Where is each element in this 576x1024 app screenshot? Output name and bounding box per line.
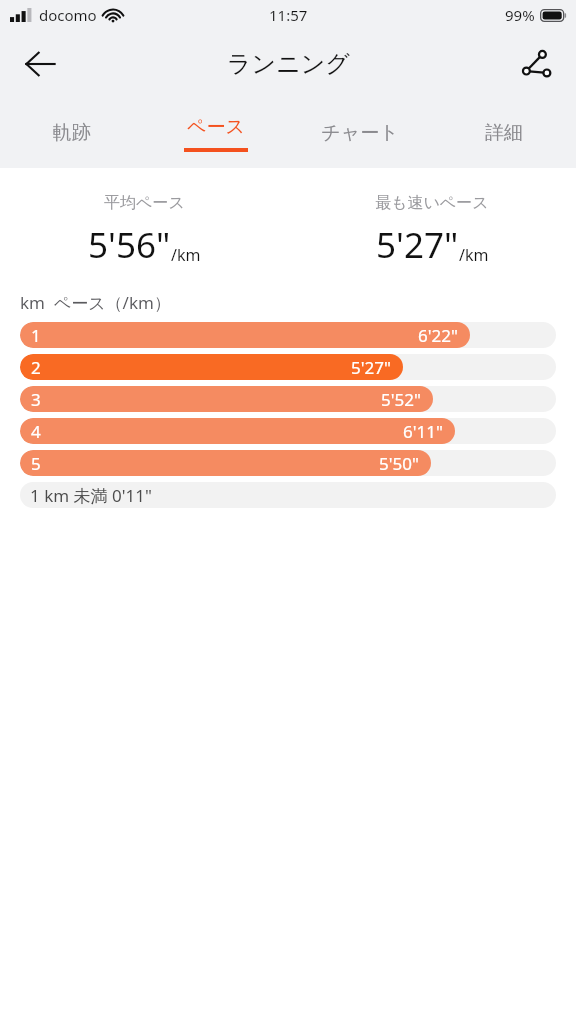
staticText: /km: [171, 244, 201, 266]
staticText: 平均ペース: [104, 193, 185, 213]
staticText: 5'56": [88, 221, 171, 269]
button[interactable]: チャート: [288, 98, 432, 168]
staticText: 11:57: [269, 5, 308, 25]
button[interactable]: 詳細: [432, 98, 576, 168]
staticText: 軌跡: [53, 121, 91, 145]
staticText: チャート: [321, 121, 399, 145]
button[interactable]: ペース: [144, 98, 288, 168]
staticText: km ペース（/km）: [20, 291, 171, 314]
staticText: 最も速いペース: [375, 193, 489, 213]
staticText: docomo: [39, 5, 97, 25]
button[interactable]: 3: [20, 386, 556, 412]
button[interactable]: Share: [508, 36, 564, 92]
button[interactable]: 2: [20, 354, 556, 380]
button[interactable]: 軌跡: [0, 98, 144, 168]
button[interactable]: 1 km 未満 0'11": [20, 482, 556, 508]
button[interactable]: 4: [20, 418, 556, 444]
staticText: 5'52": [381, 388, 421, 411]
staticText: 詳細: [485, 121, 523, 145]
staticText: 5'27": [351, 356, 391, 379]
staticText: ランニング: [227, 49, 350, 79]
staticText: 5'50": [379, 452, 419, 475]
button[interactable]: 1: [20, 322, 556, 348]
staticText: 5: [31, 452, 41, 475]
staticText: 5'27": [376, 221, 459, 269]
staticText: 3: [31, 388, 41, 411]
staticText: 1: [31, 324, 41, 347]
staticText: 4: [31, 420, 41, 443]
button[interactable]: 5: [20, 450, 556, 476]
staticText: ペース: [187, 115, 245, 139]
staticText: 99%: [505, 5, 535, 25]
staticText: 1 km 未満 0'11": [30, 484, 152, 507]
staticText: 2: [31, 356, 41, 379]
button[interactable]: Back: [12, 36, 68, 92]
staticText: 6'11": [403, 420, 443, 443]
staticText: 6'22": [418, 324, 458, 347]
staticText: /km: [459, 244, 489, 266]
